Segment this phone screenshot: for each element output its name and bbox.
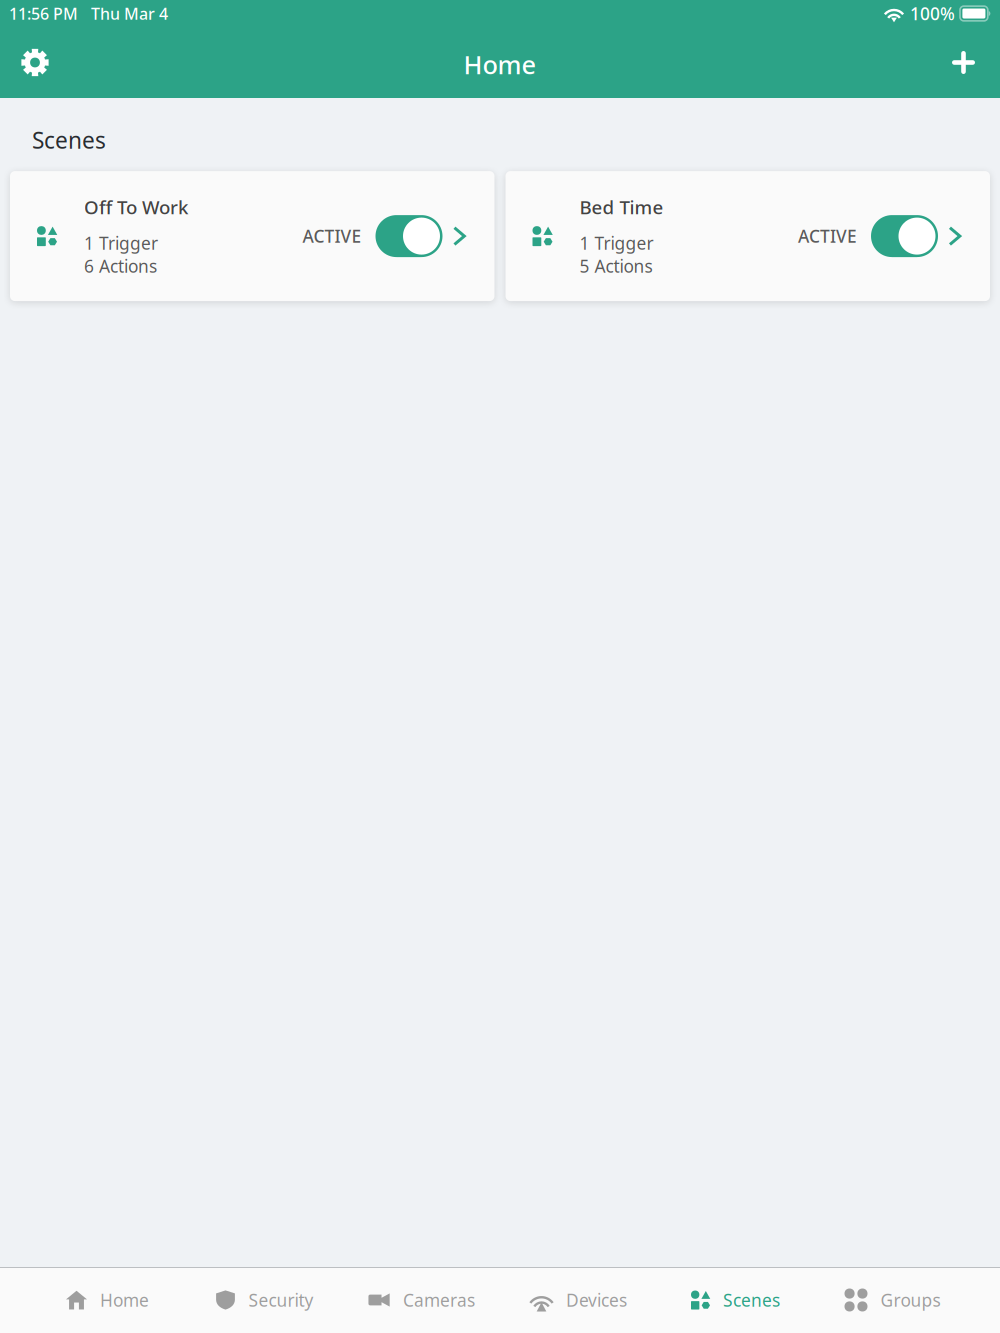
staticText: Off To Work (84, 195, 188, 219)
staticText: Thu Mar 4 (91, 3, 168, 24)
staticText: Cameras (403, 1288, 475, 1311)
button[interactable]: Scenes (657, 1267, 814, 1333)
staticText: Scenes (723, 1288, 780, 1311)
staticText: 1 Trigger (84, 231, 158, 254)
staticText: ACTIVE (798, 225, 857, 248)
staticText: ACTIVE (302, 225, 361, 248)
staticText: 5 Actions (579, 254, 652, 277)
staticText: 11:56 PM (9, 3, 78, 24)
staticText: Scenes (32, 125, 106, 155)
button[interactable]: Devices (500, 1267, 657, 1333)
button[interactable]: Home (29, 1267, 186, 1333)
staticText: 100% (910, 2, 955, 25)
staticText: Home (100, 1288, 149, 1311)
button[interactable]: Add scene (940, 39, 987, 86)
button[interactable]: Cameras (343, 1267, 500, 1333)
staticText: 6 Actions (84, 254, 157, 277)
staticText: Home (463, 48, 536, 81)
button[interactable]: Bed Time (505, 171, 990, 301)
button[interactable]: Settings (10, 37, 60, 87)
staticText: Bed Time (579, 195, 663, 219)
staticText: 1 Trigger (579, 231, 653, 254)
staticText: Groups (880, 1288, 940, 1311)
staticText: Devices (566, 1288, 627, 1311)
button[interactable]: Security (186, 1267, 343, 1333)
button[interactable]: Groups (814, 1267, 971, 1333)
staticText: Security (248, 1288, 313, 1311)
button[interactable]: Off To Work (10, 171, 494, 301)
